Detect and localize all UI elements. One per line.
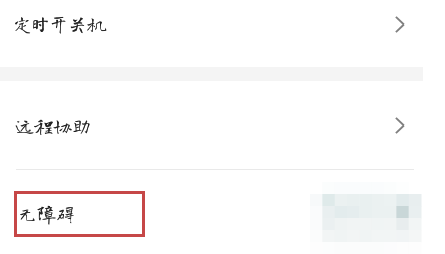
staticText: 无障碍	[18, 204, 76, 223]
other: 打开远程协助	[395, 117, 405, 134]
staticText: 定时开关机	[13, 14, 107, 33]
staticText: 定时开关机	[13, 14, 107, 33]
button[interactable]: 定时开关机	[0, 0, 445, 67]
button[interactable]: 无障碍	[14, 191, 145, 237]
staticText: 远程协助	[15, 116, 92, 135]
button[interactable]: 远程协助	[0, 81, 445, 169]
other: 打开定时开关机	[395, 16, 405, 33]
staticText: 远程协助	[15, 116, 92, 135]
staticText: 无障碍	[18, 204, 76, 223]
